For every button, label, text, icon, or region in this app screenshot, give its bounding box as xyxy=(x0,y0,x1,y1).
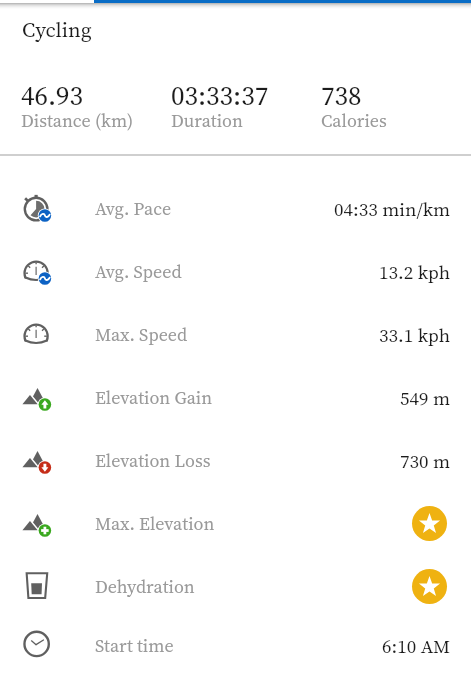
staticText: 33.1 kph xyxy=(379,322,451,348)
staticText: 738 xyxy=(321,77,362,114)
staticText: Duration xyxy=(171,108,243,133)
staticText: Avg. Pace xyxy=(95,196,172,221)
button[interactable]: Elevation Gain xyxy=(0,366,471,429)
staticText: Cycling xyxy=(22,15,92,44)
staticText: 730 m xyxy=(400,448,451,474)
staticText: 03:33:37 xyxy=(171,77,269,114)
button[interactable]: Dehydration xyxy=(0,555,471,618)
button[interactable]: Max. Elevation xyxy=(0,492,471,555)
button[interactable]: Elevation Loss xyxy=(0,429,471,492)
button[interactable]: Max. Speed xyxy=(0,303,471,366)
staticText: 6:10 AM xyxy=(382,633,451,659)
staticText: Start time xyxy=(95,633,174,658)
button[interactable]: Avg. Pace xyxy=(0,177,471,240)
button[interactable]: Start time xyxy=(0,618,471,673)
staticText: Elevation Gain xyxy=(95,385,213,410)
staticText: Elevation Loss xyxy=(95,448,211,473)
staticText: Distance (km) xyxy=(21,108,134,133)
staticText: Avg. Speed xyxy=(95,259,182,284)
staticText: 13.2 kph xyxy=(379,259,451,285)
button[interactable]: Avg. Speed xyxy=(0,240,471,303)
staticText: Dehydration xyxy=(95,574,195,599)
staticText: 04:33 min/km xyxy=(334,196,451,222)
staticText: Max. Speed xyxy=(95,322,188,347)
staticText: 46.93 xyxy=(21,77,84,114)
staticText: Max. Elevation xyxy=(95,511,215,536)
staticText: 549 m xyxy=(400,385,451,411)
staticText: Calories xyxy=(321,108,387,133)
